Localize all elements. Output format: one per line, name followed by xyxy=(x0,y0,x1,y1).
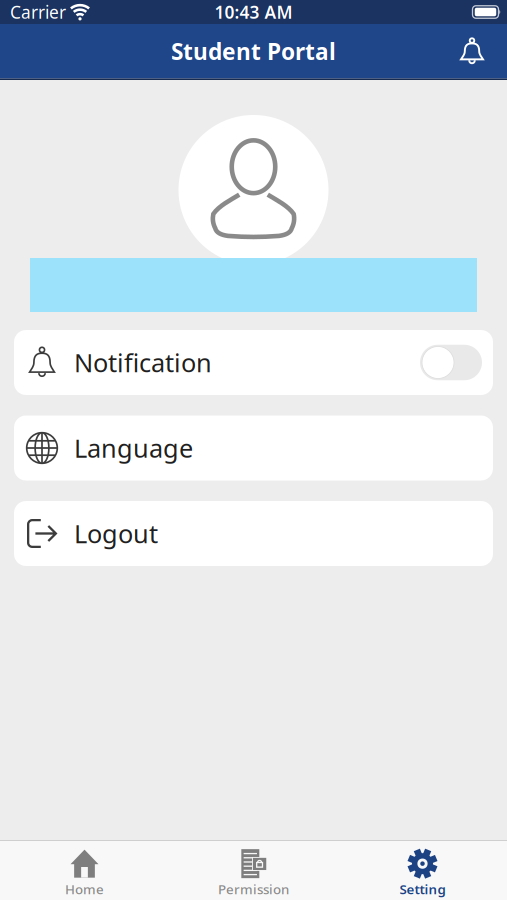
button[interactable]: Logout xyxy=(14,501,493,566)
button[interactable]: Notifications xyxy=(450,24,494,78)
staticText: Notification xyxy=(74,346,212,379)
staticText: 10:43 AM xyxy=(214,0,292,23)
staticText: Setting xyxy=(399,880,445,898)
staticText: Carrier xyxy=(10,0,66,23)
button[interactable]: Language xyxy=(14,415,493,480)
button[interactable]: Setting xyxy=(338,841,507,899)
staticText: Permission xyxy=(218,880,289,898)
button[interactable]: Home xyxy=(0,841,169,899)
staticText: Language xyxy=(74,431,193,465)
button[interactable]: Notification xyxy=(420,345,482,380)
staticText: Home xyxy=(65,880,104,898)
staticText: Logout xyxy=(74,517,158,550)
button[interactable]: Permission xyxy=(169,841,338,899)
staticText: Student Portal xyxy=(171,36,336,66)
